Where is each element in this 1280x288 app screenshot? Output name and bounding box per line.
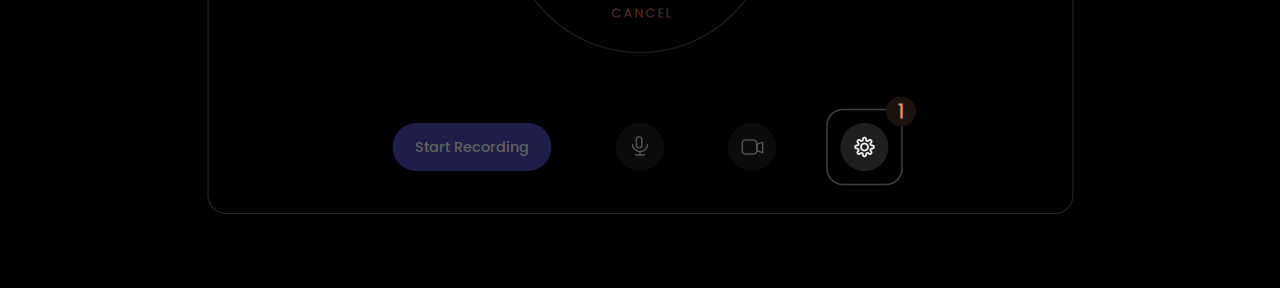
button[interactable]: Microphone [616,123,664,171]
staticText: 1 [897,97,904,125]
staticText: Start Recording [415,137,529,157]
button[interactable]: Camera [728,123,776,171]
staticText: CANCEL [611,4,670,22]
button[interactable]: Start Recording [392,123,551,171]
button[interactable]: CANCEL [596,2,686,24]
button[interactable]: Settings [827,109,902,184]
